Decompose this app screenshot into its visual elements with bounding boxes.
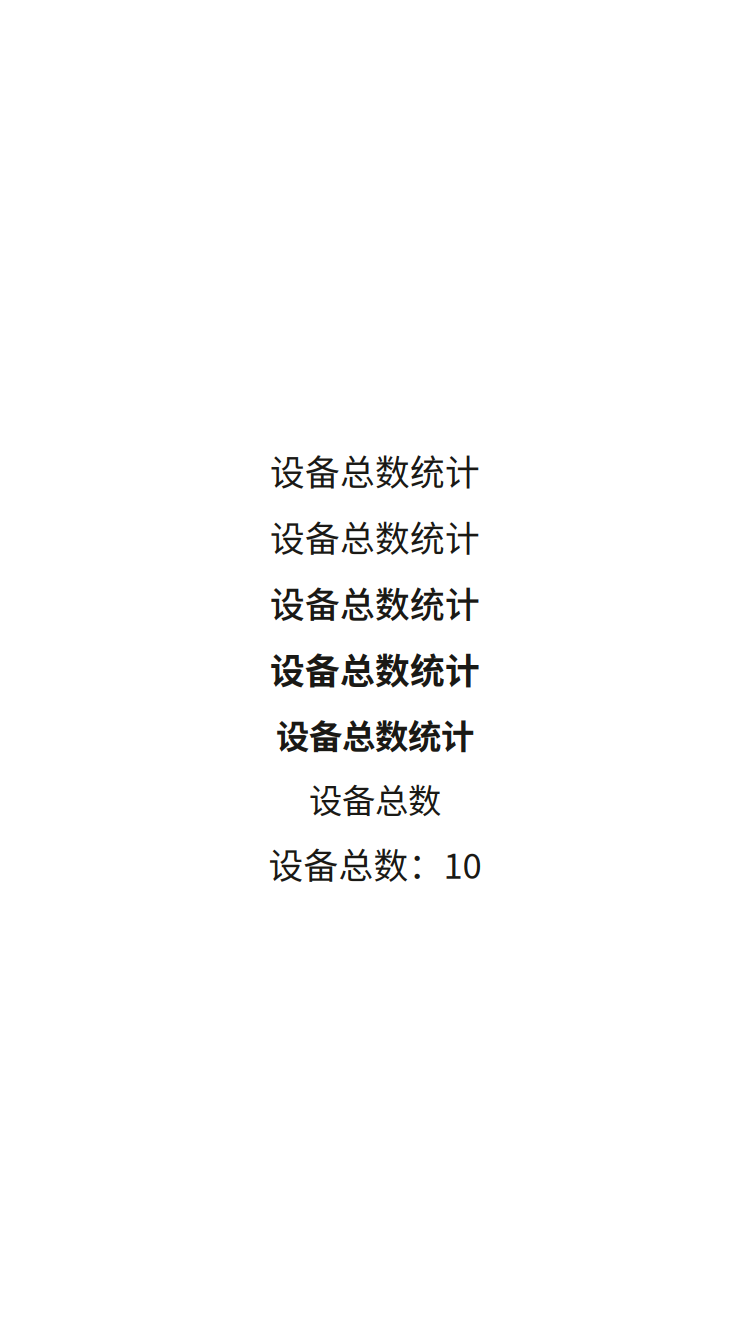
- staticText: 设备总数统计: [270, 578, 480, 628]
- staticText: 设备总数统计: [270, 644, 480, 694]
- staticText: 设备总数统计: [270, 445, 480, 495]
- staticText: 设备总数统计: [270, 511, 480, 562]
- staticText: 设备总数：10: [268, 839, 481, 889]
- staticText: 设备总数统计: [276, 710, 474, 758]
- staticText: 设备总数: [309, 774, 441, 823]
